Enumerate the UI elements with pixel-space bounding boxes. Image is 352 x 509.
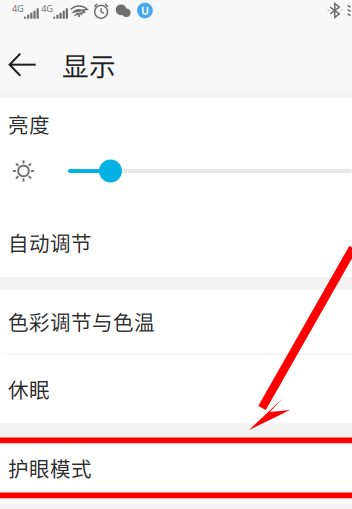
staticText: U [141,3,149,18]
button[interactable]: 护眼模式 [0,443,352,492]
staticText: 护眼模式 [8,453,92,483]
staticText: 休眠 [8,374,50,404]
button[interactable]: 亮度 [0,97,352,191]
button[interactable]: 色彩调节与色温 [0,289,352,353]
staticText: 4G [12,2,24,15]
button[interactable]: 休眠 [0,354,352,423]
staticText: 色彩调节与色温 [8,307,155,336]
button[interactable]: Back [0,23,44,91]
staticText: 显示 [62,45,116,84]
staticText: 亮度 [8,109,50,139]
staticText: 4G [41,2,53,15]
button[interactable]: 自动调节 [0,191,352,277]
staticText: 自动调节 [8,228,92,257]
